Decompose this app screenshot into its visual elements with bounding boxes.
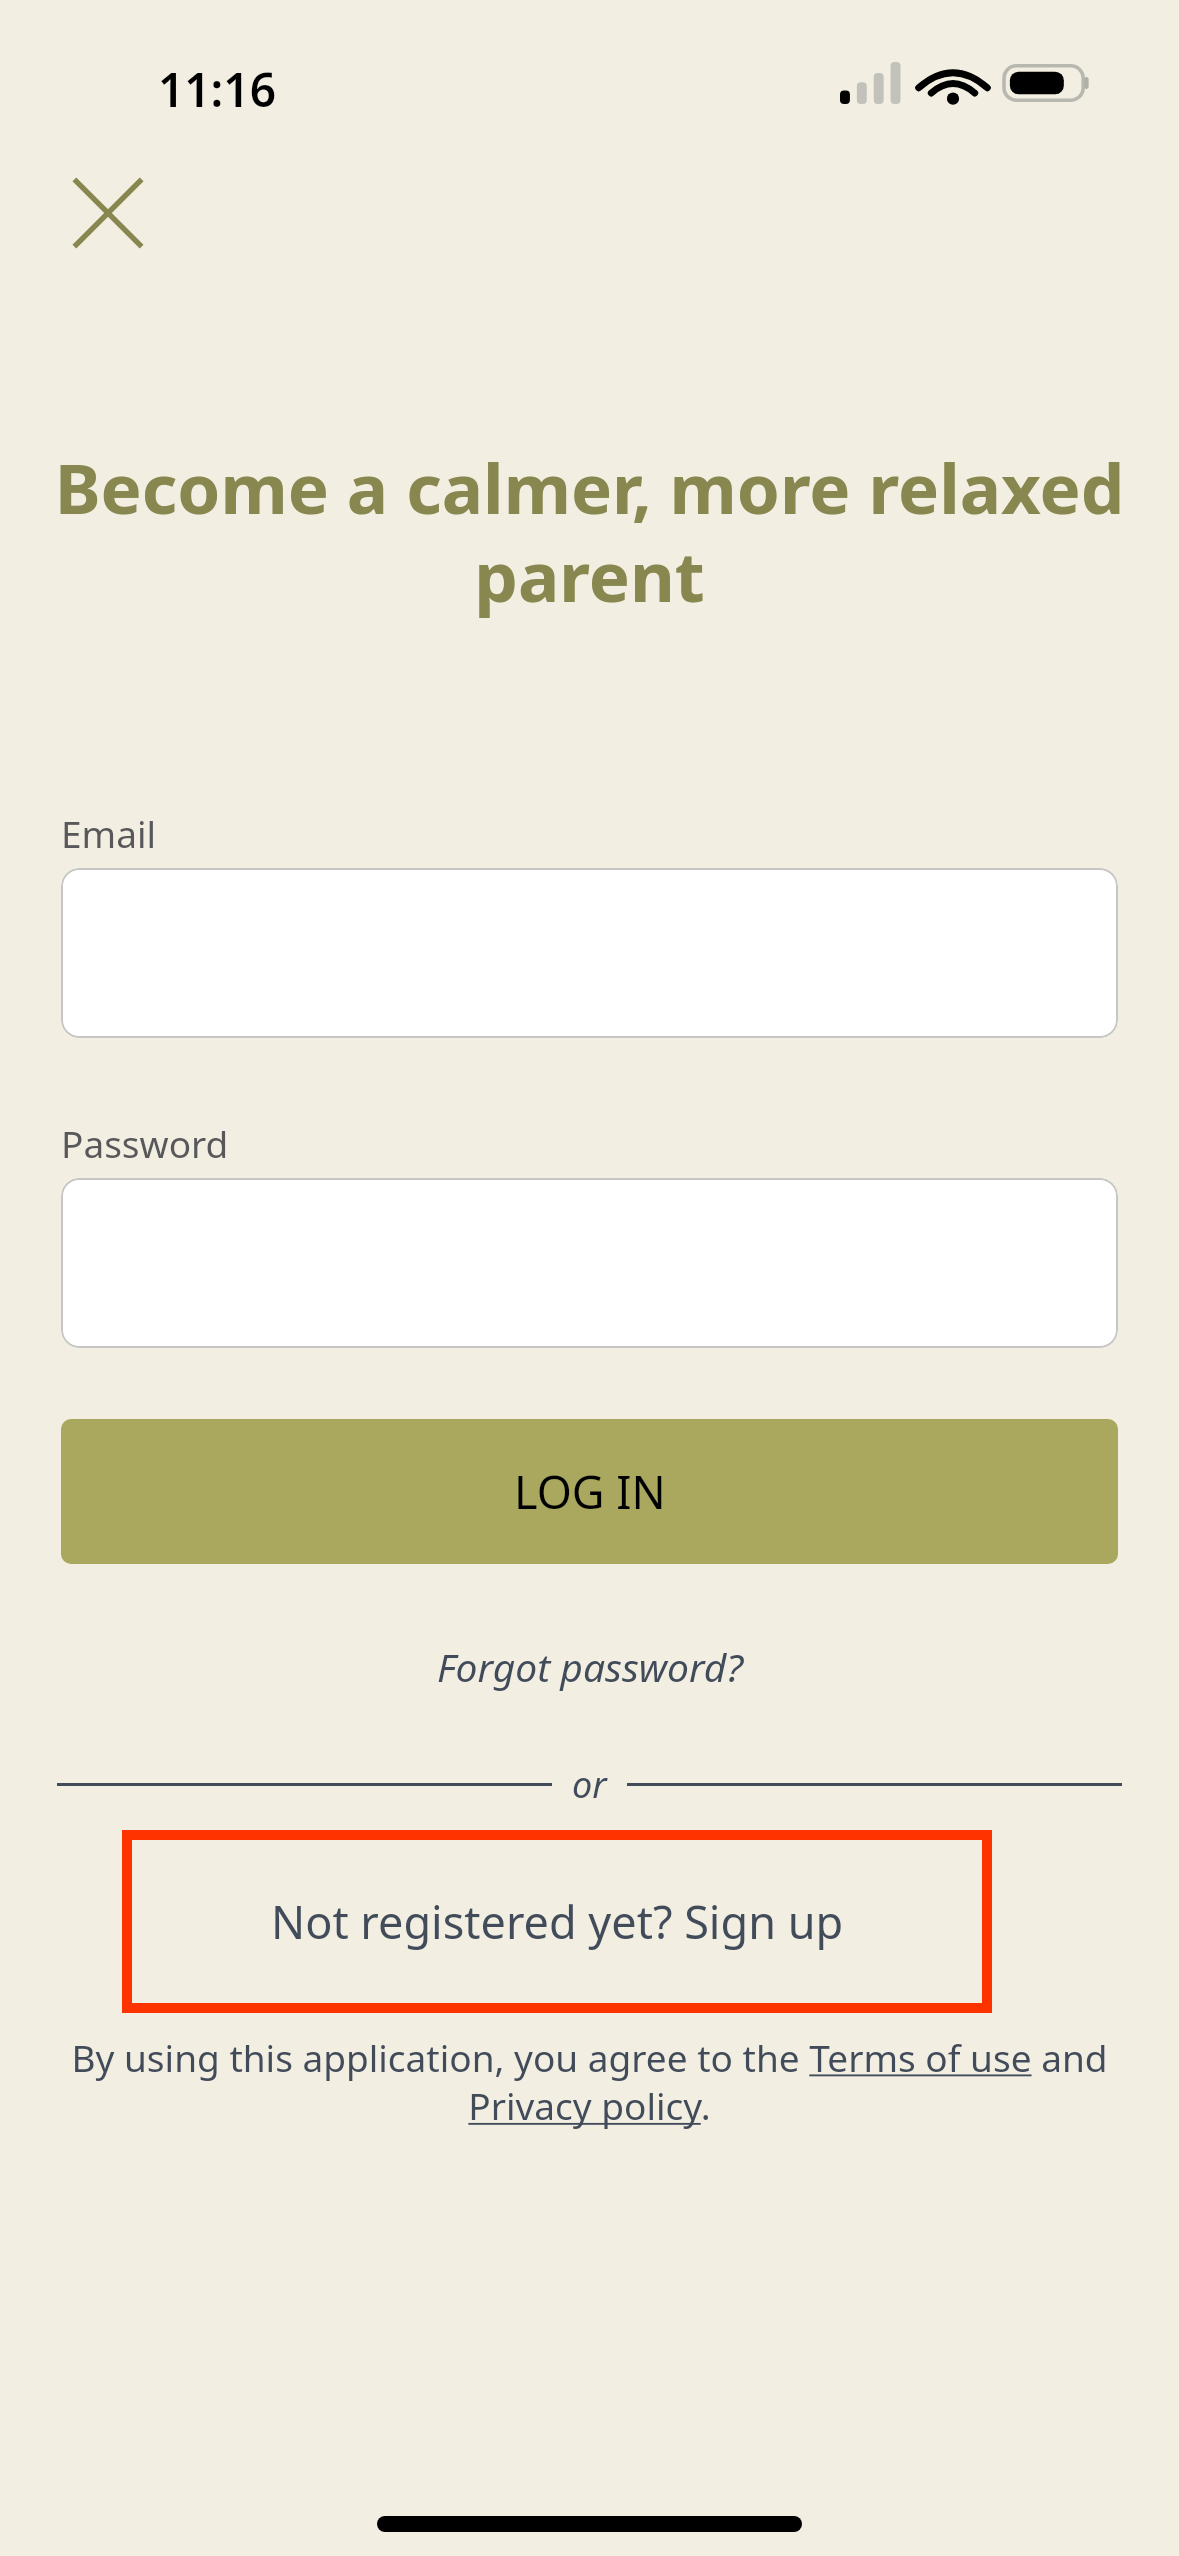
button[interactable]: Password input field <box>61 1178 1118 1348</box>
button[interactable]: Not registered yet? Sign up <box>132 1840 982 2003</box>
staticText: or <box>572 1760 607 1809</box>
staticText: Password <box>61 1118 229 1168</box>
button[interactable]: Close <box>58 163 158 263</box>
staticText: 11:16 <box>158 58 276 121</box>
button[interactable]: LOG IN <box>61 1419 1118 1564</box>
staticText: Forgot password? <box>437 1640 743 1693</box>
button[interactable]: Email input field <box>61 868 1118 1038</box>
staticText: Email <box>61 808 157 858</box>
staticText: LOG IN <box>514 1461 666 1522</box>
staticText: Become a calmer, more relaxed parent <box>50 440 1129 622</box>
staticText: Not registered yet? Sign up <box>271 1891 844 1952</box>
staticText: By using this application, you agree to … <box>55 2032 1124 2131</box>
button[interactable]: Forgot password? <box>413 1630 767 1703</box>
